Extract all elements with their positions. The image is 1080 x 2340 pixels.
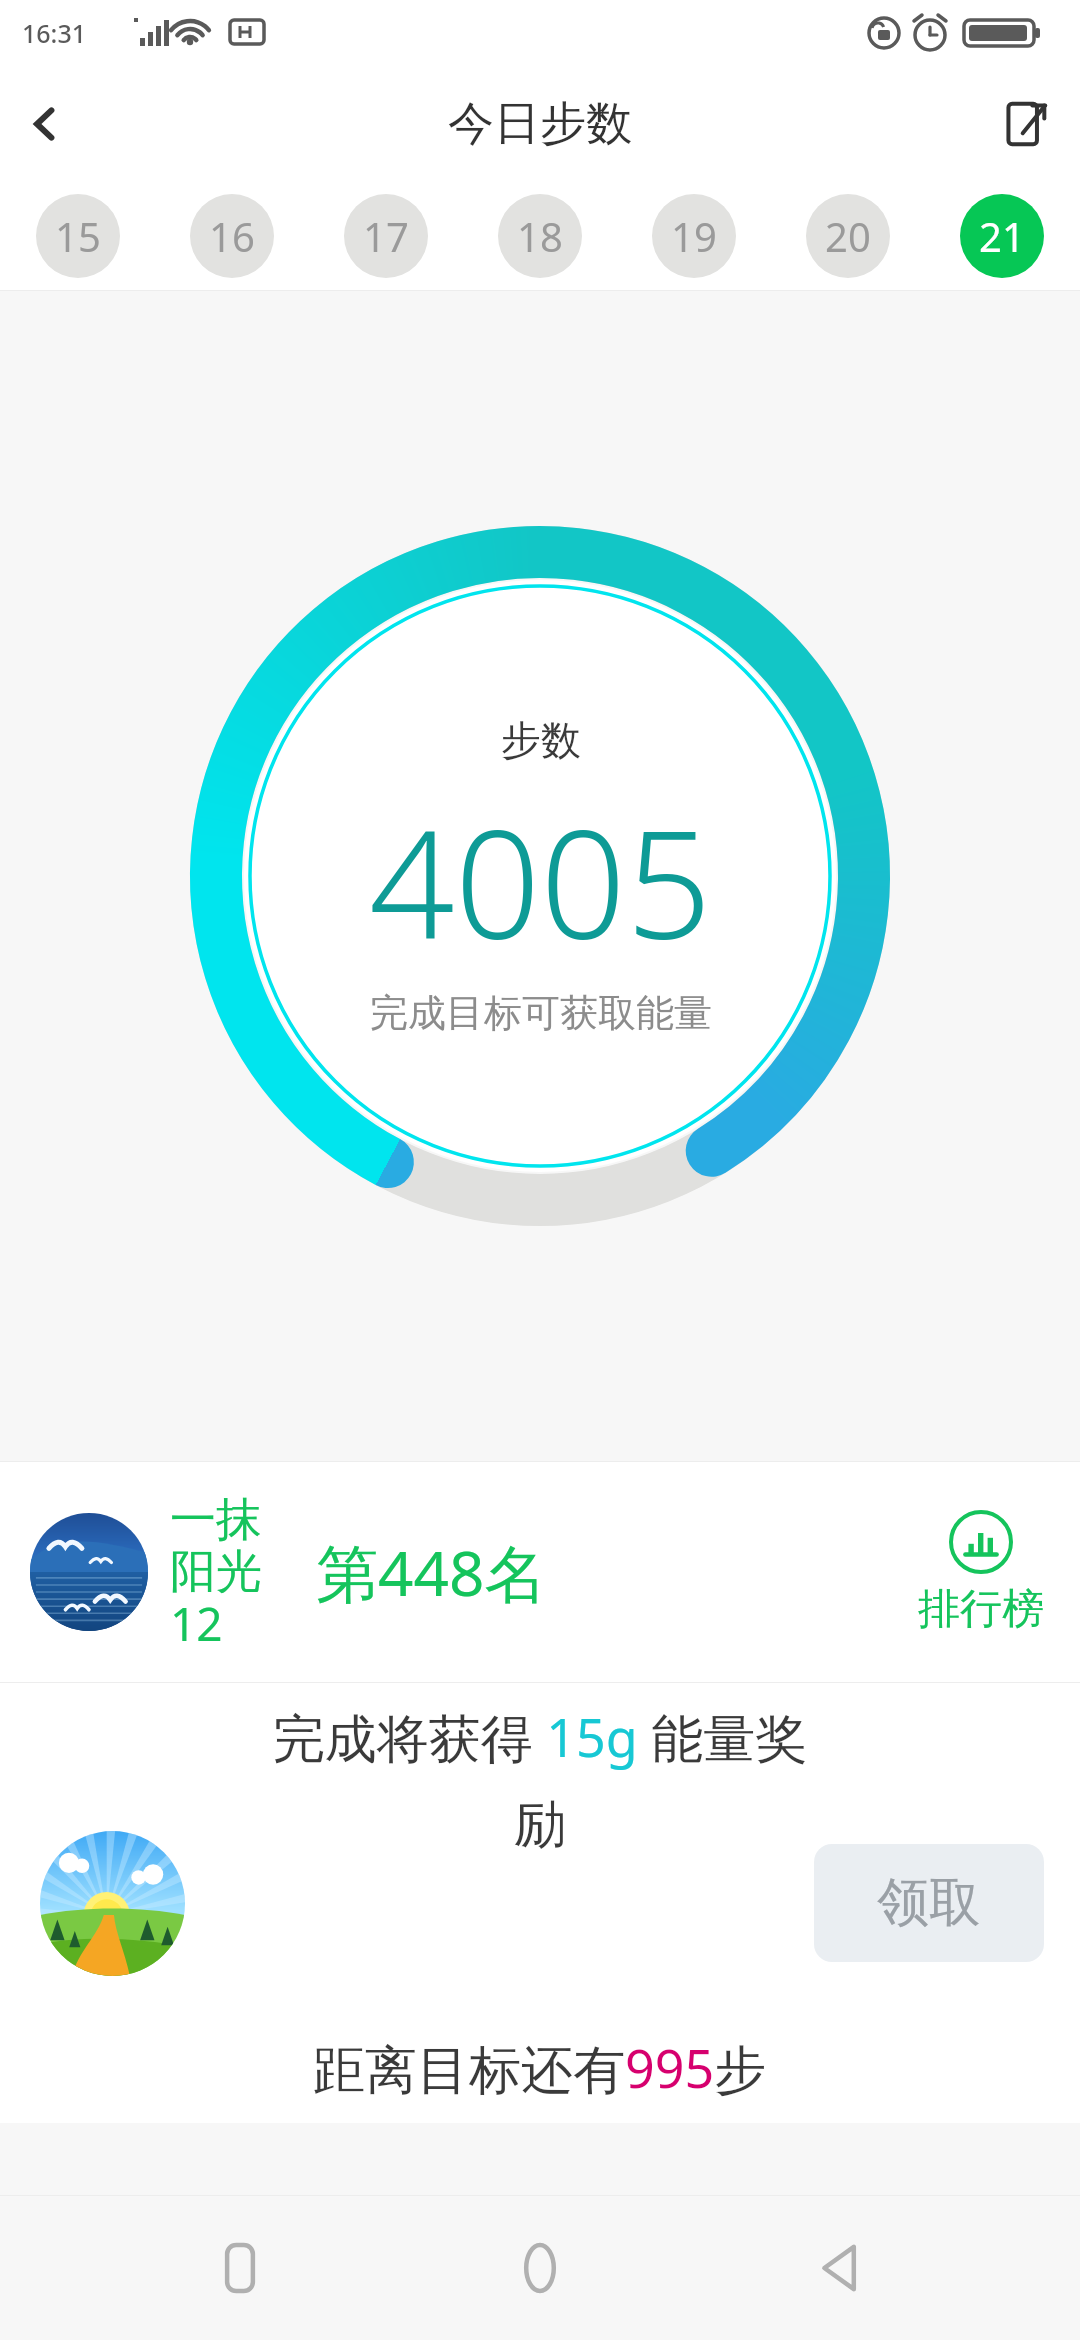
staticText: 21: [979, 209, 1025, 263]
staticText: 16:31: [22, 16, 87, 50]
button[interactable]: Back: [780, 2208, 900, 2328]
button[interactable]: 15: [36, 194, 120, 278]
staticText: 19: [671, 209, 717, 263]
staticText: 一抹阳光12: [170, 1491, 290, 1654]
staticText: 距离目标还有995步: [313, 2032, 767, 2103]
staticText: 16: [209, 209, 255, 263]
staticText: 18: [517, 209, 563, 263]
staticText: 步数: [501, 715, 581, 765]
button[interactable]: 16: [190, 194, 274, 278]
staticText: 15: [55, 209, 101, 263]
staticText: 4005: [369, 779, 712, 983]
button[interactable]: Home: [480, 2208, 600, 2328]
button[interactable]: Back: [0, 79, 90, 169]
staticText: 20: [825, 209, 871, 263]
button[interactable]: 21: [960, 194, 1044, 278]
staticText: 今日步数: [448, 95, 632, 153]
button[interactable]: Energy: [40, 1831, 185, 1976]
button[interactable]: 19: [652, 194, 736, 278]
staticText: 完成将获得 15g 能量奖励: [270, 1701, 810, 1858]
staticText: 完成目标可获取能量: [370, 989, 712, 1037]
button[interactable]: 20: [806, 194, 890, 278]
button[interactable]: 18: [498, 194, 582, 278]
button[interactable]: Recents: [180, 2208, 300, 2328]
staticText: 第448名: [316, 1530, 547, 1615]
button[interactable]: 领取: [814, 1844, 1044, 1962]
staticText: 17: [363, 209, 409, 263]
button[interactable]: Share: [980, 79, 1070, 169]
button[interactable]: 17: [344, 194, 428, 278]
staticText: 领取: [877, 1870, 981, 1936]
button[interactable]: 排行榜: [912, 1509, 1050, 1636]
staticText: 排行榜: [918, 1583, 1044, 1636]
button[interactable]: Avatar: [30, 1513, 148, 1631]
